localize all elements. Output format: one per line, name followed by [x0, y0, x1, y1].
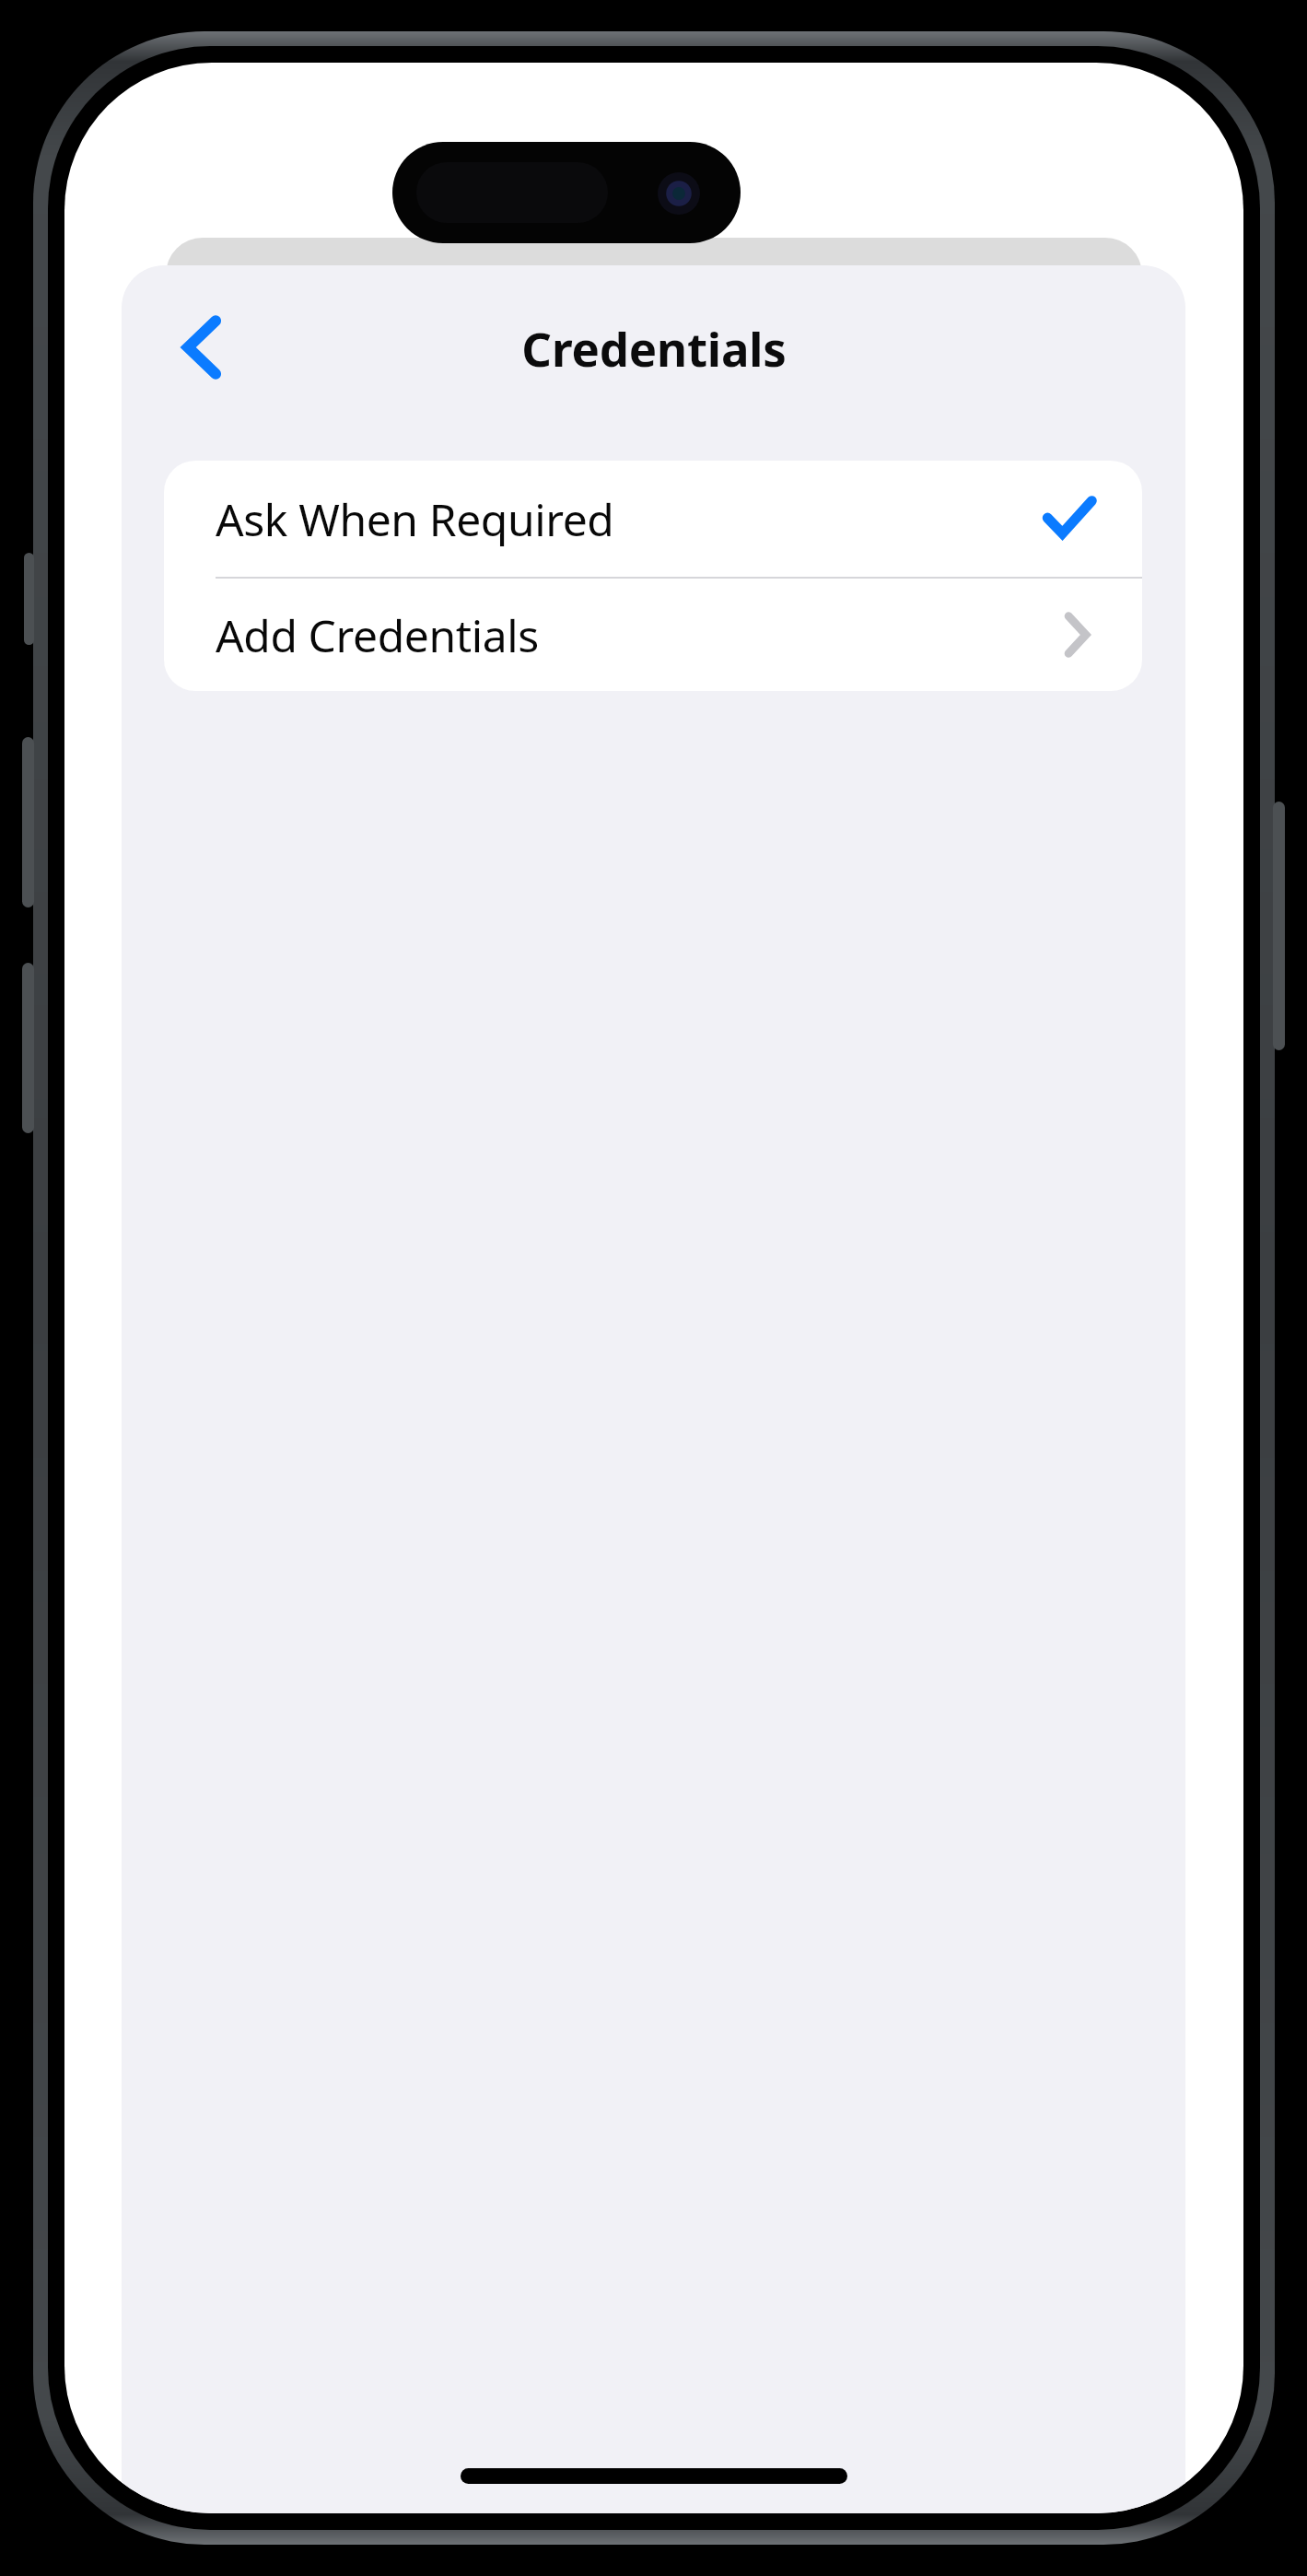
button[interactable]: Ask When Required — [164, 461, 1142, 577]
staticText: Credentials — [521, 316, 787, 380]
button[interactable]: Back — [157, 301, 249, 393]
button[interactable]: Add Credentials — [164, 579, 1142, 691]
staticText: Add Credentials — [216, 605, 1065, 665]
staticText: Ask When Required — [216, 489, 1044, 549]
